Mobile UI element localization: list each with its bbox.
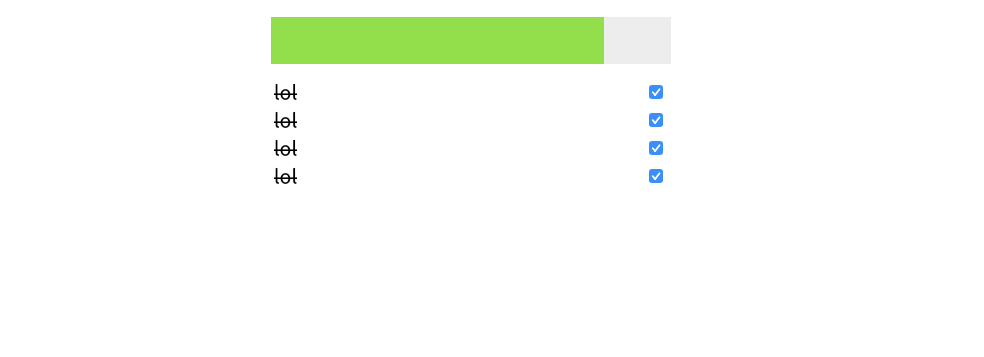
other: Progress 83 percent <box>271 17 671 64</box>
staticText: lol <box>274 109 298 131</box>
staticText: lol <box>274 137 298 159</box>
button[interactable]: lol <box>271 106 671 134</box>
button[interactable]: Task completed <box>649 113 663 127</box>
button[interactable]: Task completed <box>649 85 663 99</box>
button[interactable]: lol <box>271 162 671 190</box>
button[interactable]: Task completed <box>649 169 663 183</box>
button[interactable]: lol <box>271 134 671 162</box>
button[interactable]: lol <box>271 78 671 106</box>
button[interactable]: Task completed <box>649 141 663 155</box>
staticText: lol <box>274 81 298 103</box>
staticText: lol <box>274 165 298 187</box>
